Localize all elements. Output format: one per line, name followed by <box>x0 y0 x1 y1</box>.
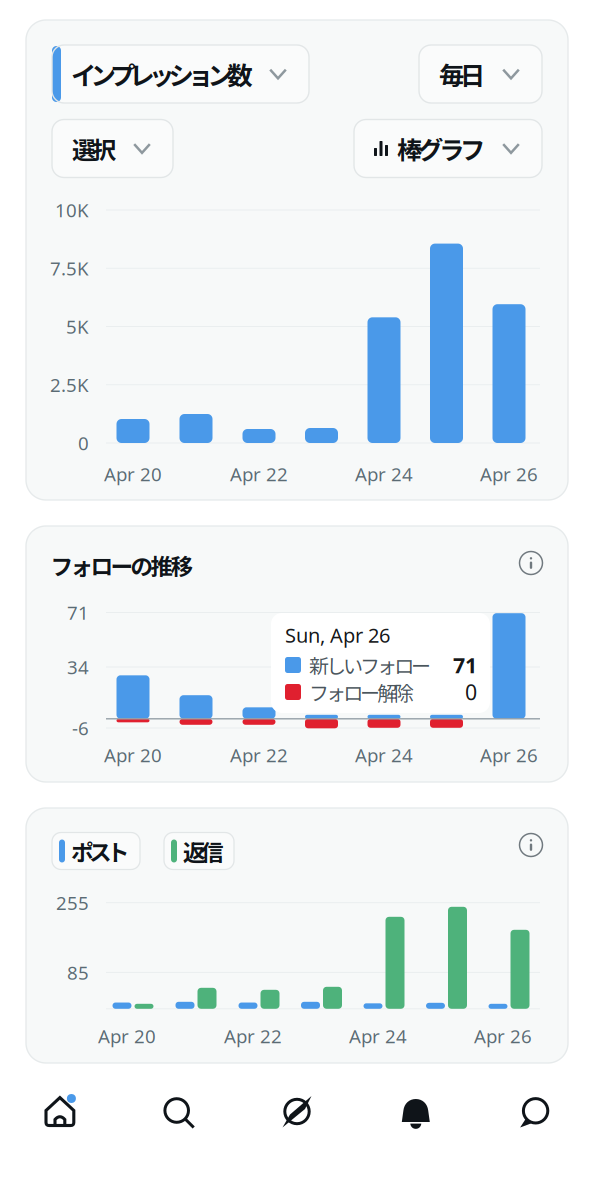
button[interactable]: 検索 <box>119 1066 238 1160</box>
staticText: Apr 20 <box>104 743 162 767</box>
staticText: 2.5K <box>50 372 89 397</box>
staticText: 85 <box>67 960 89 985</box>
staticText: Apr 22 <box>230 743 288 767</box>
staticText: ポスト <box>71 835 130 867</box>
staticText: 毎日 <box>439 56 485 92</box>
staticText: Apr 22 <box>230 462 288 486</box>
staticText: 7.5K <box>50 256 89 281</box>
staticText: 255 <box>56 890 89 915</box>
button[interactable]: ホーム <box>0 1066 119 1160</box>
button[interactable]: インプレッション数 <box>52 45 309 103</box>
staticText: 5K <box>66 314 89 339</box>
staticText: フォローの推移 <box>50 549 193 581</box>
staticText: Apr 22 <box>224 1024 282 1048</box>
staticText: 返信 <box>183 835 224 867</box>
staticText: Sun, Apr 26 <box>285 622 390 648</box>
staticText: -6 <box>72 716 89 740</box>
staticText: フォロー解除 <box>309 677 414 706</box>
button[interactable]: メッセージ <box>475 1066 594 1160</box>
staticText: Apr 24 <box>355 743 413 767</box>
staticText: 34 <box>67 655 89 679</box>
staticText: Apr 26 <box>480 743 538 767</box>
staticText: Apr 20 <box>98 1024 156 1048</box>
staticText: Apr 24 <box>355 462 413 486</box>
button[interactable]: 選択 <box>52 119 173 177</box>
staticText: 71 <box>453 651 477 679</box>
staticText: Apr 26 <box>480 462 538 486</box>
button[interactable]: 詳細情報 <box>511 543 550 582</box>
staticText: 新しいフォロー <box>309 650 431 679</box>
button[interactable]: Grok <box>238 1066 356 1160</box>
button[interactable]: 詳細情報 <box>511 825 550 864</box>
staticText: 棒グラフ <box>397 130 485 167</box>
staticText: 10K <box>55 198 89 222</box>
staticText: 71 <box>67 600 89 625</box>
button[interactable]: ポスト <box>52 832 140 869</box>
staticText: 0 <box>465 678 477 706</box>
staticText: 選択 <box>72 131 116 166</box>
button[interactable]: 毎日 <box>419 45 542 103</box>
button[interactable]: 返信 <box>164 832 234 869</box>
staticText: 0 <box>78 431 89 455</box>
button[interactable]: 通知 <box>356 1066 475 1160</box>
staticText: Apr 24 <box>349 1024 407 1048</box>
staticText: インプレッション数 <box>71 56 252 92</box>
staticText: Apr 20 <box>104 462 162 486</box>
staticText: Apr 26 <box>474 1024 532 1048</box>
button[interactable]: 棒グラフ <box>354 119 542 177</box>
